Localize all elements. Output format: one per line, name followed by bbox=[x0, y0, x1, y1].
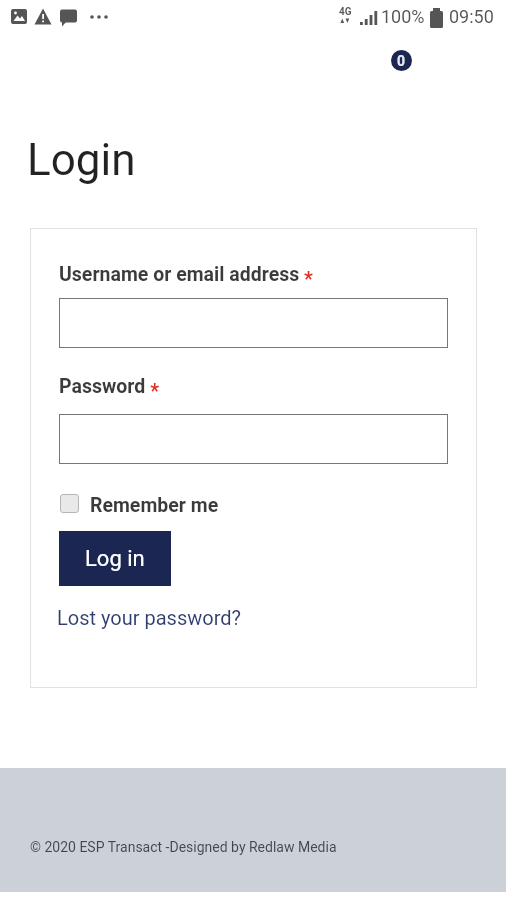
button[interactable] bbox=[59, 298, 448, 348]
staticText: 100% bbox=[381, 6, 425, 27]
staticText: © 2020 ESP Transact -Designed by Redlaw … bbox=[30, 839, 337, 855]
staticText: Login bbox=[27, 134, 136, 186]
staticText: 09:50 bbox=[449, 6, 494, 27]
button[interactable] bbox=[59, 414, 448, 464]
staticText: 4G bbox=[339, 6, 352, 18]
button[interactable]: 0 bbox=[391, 50, 412, 71]
staticText: Remember me bbox=[90, 494, 219, 517]
staticText: Username or email address * bbox=[59, 263, 313, 291]
button[interactable]: Remember me bbox=[60, 494, 189, 517]
staticText: Password * bbox=[59, 375, 160, 403]
staticText: 0 bbox=[397, 53, 406, 69]
button[interactable]: Lost your password? bbox=[57, 606, 242, 629]
button[interactable]: Log in bbox=[59, 531, 171, 586]
staticText: Log in bbox=[85, 546, 145, 572]
